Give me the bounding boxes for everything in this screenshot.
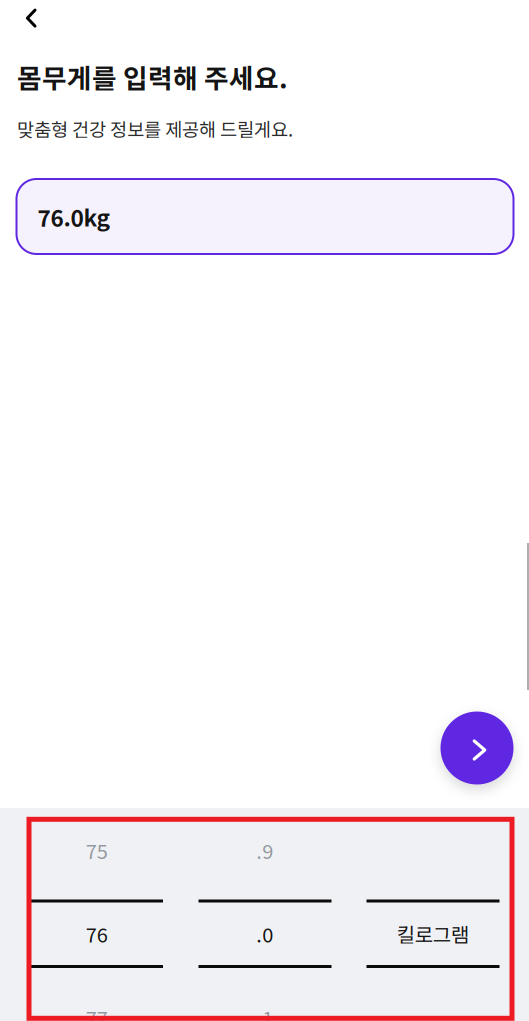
staticText: 76 xyxy=(86,919,108,948)
button[interactable]: 76.0kg xyxy=(16,179,513,254)
staticText: .0 xyxy=(256,919,273,948)
staticText: .1 xyxy=(256,1003,273,1021)
staticText: 75 xyxy=(86,836,108,865)
button[interactable]: Back xyxy=(0,0,58,40)
staticText: 킬로그램 xyxy=(397,919,469,948)
staticText: 76.0kg xyxy=(37,200,110,233)
staticText: .9 xyxy=(256,836,273,865)
staticText: 맞춤형 건강 정보를 제공해 드릴게요. xyxy=(17,115,293,142)
button[interactable]: Next xyxy=(440,711,513,784)
staticText: 77 xyxy=(86,1003,108,1021)
staticText: 몸무게를 입력해 주세요. xyxy=(17,57,288,96)
